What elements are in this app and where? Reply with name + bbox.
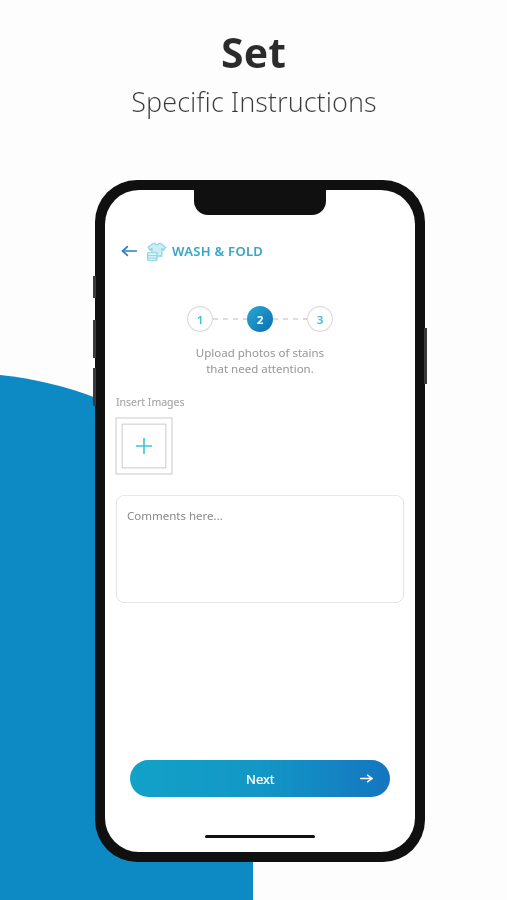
button[interactable]: 2 bbox=[247, 306, 273, 332]
staticText: Set bbox=[221, 24, 286, 80]
staticText: 3 bbox=[317, 312, 324, 327]
staticText: 2 bbox=[257, 312, 264, 327]
staticText: Insert Images bbox=[116, 395, 185, 409]
button[interactable]: Comments here... bbox=[116, 495, 404, 603]
staticText: WASH & FOLD bbox=[172, 242, 264, 260]
button[interactable]: 3 bbox=[307, 306, 333, 332]
staticText: Comments here... bbox=[127, 508, 223, 524]
staticText: Upload photos of stains that need attent… bbox=[105, 345, 415, 376]
staticText: Next bbox=[246, 770, 275, 788]
button[interactable]: Next bbox=[130, 760, 390, 797]
staticText: Specific Instructions bbox=[131, 83, 377, 120]
button[interactable]: Back bbox=[116, 238, 142, 264]
staticText: 1 bbox=[197, 312, 204, 327]
button[interactable]: 1 bbox=[187, 306, 213, 332]
button[interactable]: Add image bbox=[116, 418, 172, 474]
